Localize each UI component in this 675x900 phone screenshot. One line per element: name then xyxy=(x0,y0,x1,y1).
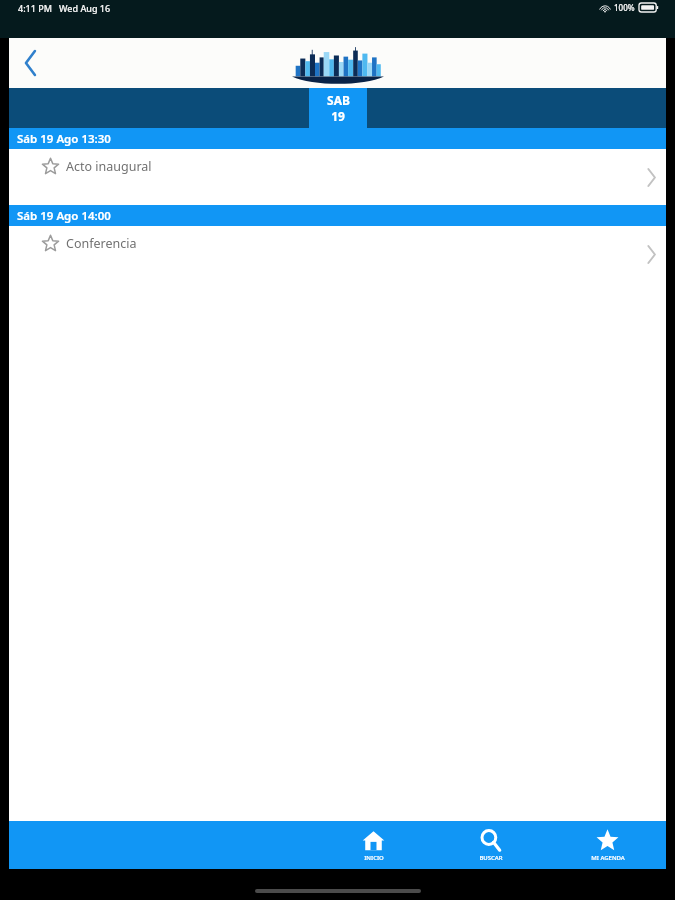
staticText: Conferencia xyxy=(66,235,137,252)
staticText: SAB xyxy=(327,92,350,108)
staticText: 4:11 PM xyxy=(18,2,52,14)
staticText: Wed Aug 16 xyxy=(59,2,111,14)
button[interactable]: Back xyxy=(9,41,53,85)
staticText: MI AGENDA xyxy=(591,854,625,862)
button[interactable]: INICIO xyxy=(315,821,432,869)
staticText: Sáb 19 Ago 13:30 xyxy=(17,131,111,147)
staticText: INICIO xyxy=(364,854,384,862)
staticText: 100% xyxy=(614,2,635,13)
button[interactable]: Conferencia xyxy=(9,226,666,282)
staticText: Sáb 19 Ago 14:00 xyxy=(17,208,111,224)
staticText: 19 xyxy=(331,108,345,124)
button[interactable]: MI AGENDA xyxy=(549,821,666,869)
staticText: Acto inaugural xyxy=(66,158,152,175)
button[interactable]: SAB xyxy=(309,88,367,128)
button[interactable]: BUSCAR xyxy=(432,821,549,869)
button[interactable]: Acto inaugural xyxy=(9,149,666,205)
staticText: BUSCAR xyxy=(479,854,503,862)
